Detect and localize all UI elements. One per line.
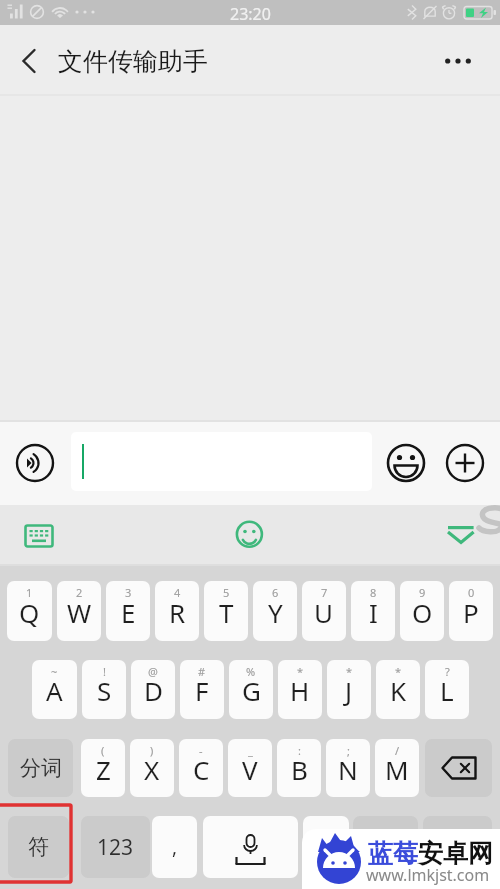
- staticText: -: [199, 743, 203, 758]
- button[interactable]: Backspace: [425, 739, 492, 797]
- button[interactable]: /: [375, 739, 419, 797]
- staticText: W: [67, 595, 92, 630]
- button[interactable]: Emoji key: [303, 816, 349, 878]
- staticText: 8: [370, 585, 377, 600]
- staticText: _: [248, 743, 253, 758]
- button[interactable]: More functions: [443, 441, 487, 485]
- button[interactable]: :: [277, 739, 321, 797]
- staticText: O: [412, 595, 433, 630]
- staticText: ?: [445, 664, 450, 679]
- button[interactable]: 5: [204, 581, 248, 641]
- button[interactable]: [353, 816, 418, 878]
- button[interactable]: 6: [253, 581, 297, 641]
- staticText: T: [219, 595, 234, 630]
- button[interactable]: 2: [57, 581, 101, 641]
- staticText: 符: [28, 834, 49, 860]
- staticText: R: [169, 595, 186, 630]
- button[interactable]: 7: [302, 581, 346, 641]
- button[interactable]: *: [278, 660, 322, 719]
- staticText: M: [385, 752, 409, 787]
- staticText: /: [395, 743, 400, 758]
- button[interactable]: ~: [32, 660, 77, 719]
- button[interactable]: ,: [152, 816, 197, 878]
- staticText: *: [346, 664, 353, 679]
- staticText: 分词: [20, 755, 62, 781]
- staticText: *: [395, 664, 402, 679]
- staticText: U: [314, 595, 334, 630]
- button[interactable]: (: [81, 739, 125, 797]
- staticText: ): [150, 743, 154, 758]
- staticText: X: [144, 752, 160, 787]
- staticText: Y: [268, 595, 283, 630]
- staticText: G: [242, 673, 261, 708]
- button[interactable]: ;: [326, 739, 370, 797]
- staticText: 1: [26, 585, 33, 600]
- staticText: N: [338, 752, 358, 787]
- staticText: 文件传输助手: [58, 46, 208, 77]
- button[interactable]: #: [180, 660, 224, 719]
- button[interactable]: 符: [8, 816, 69, 878]
- staticText: 9: [419, 585, 426, 600]
- button[interactable]: 8: [351, 581, 395, 641]
- staticText: H: [290, 673, 310, 708]
- button[interactable]: 1: [7, 581, 52, 641]
- staticText: Q: [19, 595, 40, 630]
- staticText: 123: [97, 833, 134, 862]
- button[interactable]: Voice input: [13, 441, 57, 485]
- button[interactable]: %: [229, 660, 273, 719]
- button[interactable]: *: [327, 660, 371, 719]
- button[interactable]: Back: [0, 25, 56, 95]
- staticText: www.lmkjst.com: [366, 864, 490, 886]
- button[interactable]: 4: [155, 581, 199, 641]
- button[interactable]: ?: [425, 660, 469, 719]
- button[interactable]: [423, 816, 492, 878]
- staticText: A: [46, 673, 63, 708]
- button[interactable]: @: [131, 660, 175, 719]
- button[interactable]: 分词: [8, 739, 73, 797]
- button[interactable]: More options: [444, 25, 500, 95]
- staticText: (: [101, 743, 105, 758]
- staticText: 7: [321, 585, 328, 600]
- staticText: 0: [468, 585, 475, 600]
- staticText: !: [103, 664, 106, 679]
- button[interactable]: [71, 432, 372, 491]
- button[interactable]: Emoji panel: [228, 513, 272, 557]
- button[interactable]: 123: [81, 816, 150, 878]
- button[interactable]: 0: [449, 581, 493, 641]
- staticText: 4: [174, 585, 181, 600]
- staticText: K: [390, 673, 407, 708]
- staticText: ,: [172, 834, 178, 860]
- staticText: I: [369, 595, 378, 630]
- staticText: 安卓网: [418, 838, 493, 869]
- button[interactable]: !: [82, 660, 126, 719]
- staticText: @: [148, 664, 158, 679]
- button[interactable]: ): [130, 739, 174, 797]
- button[interactable]: Space: [203, 816, 298, 878]
- staticText: 23:20: [230, 3, 271, 25]
- staticText: L: [440, 673, 454, 708]
- staticText: D: [144, 673, 163, 708]
- staticText: C: [193, 752, 210, 787]
- staticText: ;: [347, 743, 350, 758]
- staticText: B: [291, 752, 308, 787]
- button[interactable]: 3: [106, 581, 150, 641]
- button[interactable]: *: [376, 660, 420, 719]
- button[interactable]: -: [179, 739, 223, 797]
- staticText: %: [246, 664, 256, 679]
- staticText: E: [121, 595, 136, 630]
- staticText: 5: [223, 585, 230, 600]
- staticText: Z: [96, 752, 111, 787]
- button[interactable]: Keyboard: [18, 518, 60, 554]
- staticText: V: [242, 752, 258, 787]
- staticText: P: [463, 595, 479, 630]
- staticText: 蓝莓: [368, 838, 418, 869]
- staticText: *: [297, 664, 304, 679]
- button[interactable]: Emoji: [384, 441, 428, 485]
- button[interactable]: Hide keyboard: [440, 512, 484, 558]
- button[interactable]: 9: [400, 581, 444, 641]
- staticText: J: [345, 673, 353, 708]
- staticText: 2: [76, 585, 83, 600]
- staticText: #: [198, 664, 206, 679]
- staticText: F: [195, 673, 209, 708]
- button[interactable]: _: [228, 739, 272, 797]
